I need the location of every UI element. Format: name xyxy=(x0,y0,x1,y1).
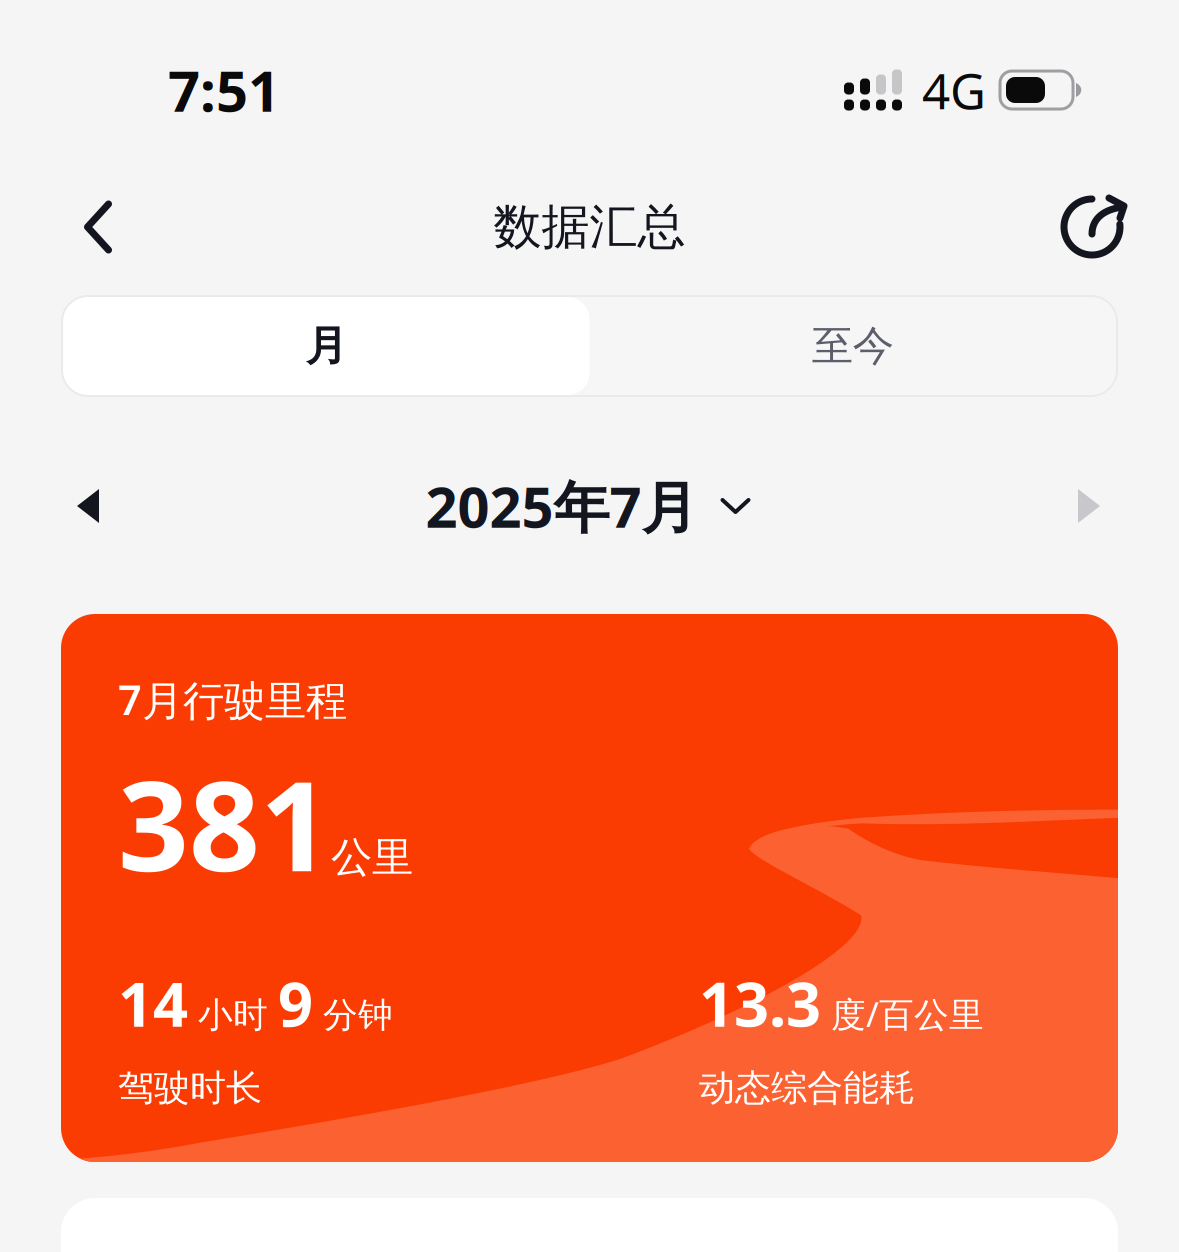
staticText: 至今 xyxy=(812,321,894,371)
button[interactable]: Next month xyxy=(1047,464,1131,548)
button[interactable]: 至今 xyxy=(589,297,1116,395)
staticText: 分钟 xyxy=(313,994,393,1037)
staticText: 7:51 xyxy=(168,53,280,127)
staticText: 驾驶时长 xyxy=(118,1066,262,1110)
staticText: 7月行驶里程 xyxy=(118,672,347,727)
staticText: 2025年7月 xyxy=(425,469,697,543)
button[interactable]: Share xyxy=(1049,181,1141,273)
staticText: 数据汇总 xyxy=(493,197,685,256)
staticText: 381 xyxy=(118,741,331,906)
staticText: 公里 xyxy=(331,832,413,883)
staticText: 小时 xyxy=(188,994,278,1037)
staticText: 动态综合能耗 xyxy=(699,1066,915,1110)
staticText: 13.3 xyxy=(699,962,821,1044)
staticText: 14 xyxy=(118,962,188,1044)
staticText: 度/百公里 xyxy=(821,991,984,1037)
staticText: 月 xyxy=(306,321,347,371)
button[interactable]: 2025年7月 xyxy=(425,464,751,548)
staticText: 4G xyxy=(922,57,986,123)
button[interactable]: Previous month xyxy=(46,464,130,548)
staticText: 9 xyxy=(278,962,313,1044)
button[interactable]: Back xyxy=(52,181,144,273)
button[interactable]: 月 xyxy=(63,297,589,395)
